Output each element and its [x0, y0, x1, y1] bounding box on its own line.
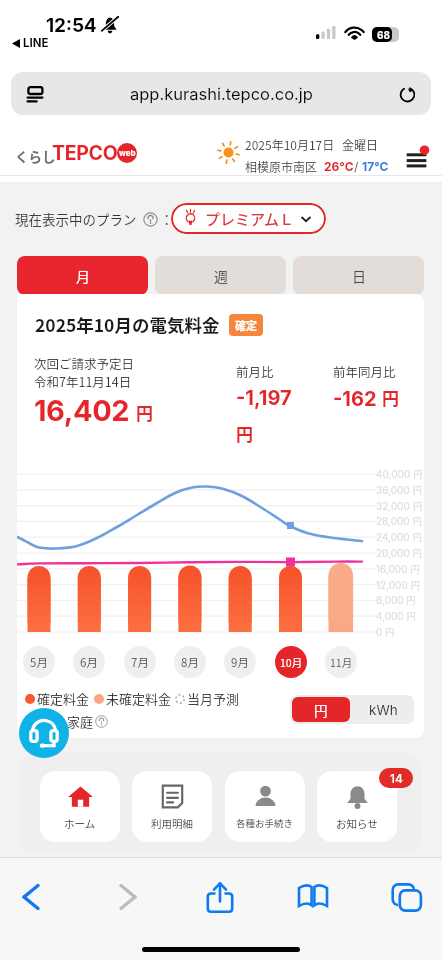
- button[interactable]: 5月: [23, 646, 55, 678]
- button[interactable]: ホーム: [40, 771, 120, 842]
- staticText: 日: [352, 266, 366, 286]
- staticText: 5月: [30, 654, 48, 671]
- staticText: 24,000 円: [376, 531, 423, 544]
- staticText: 相模原市南区: [245, 158, 318, 175]
- staticText: 週: [214, 266, 228, 286]
- button[interactable]: 11月: [325, 646, 357, 678]
- staticText: 17°C: [362, 159, 389, 174]
- staticText: 40,000 円: [376, 468, 423, 481]
- staticText: 7月: [131, 654, 149, 671]
- staticText: 前月比: [236, 362, 274, 380]
- staticText: 12,000 円: [376, 579, 421, 592]
- staticText: 68: [377, 29, 391, 41]
- staticText: 当月予測: [187, 689, 240, 708]
- staticText: 32,000 円: [376, 500, 423, 513]
- staticText: 令和7年11月14日: [34, 372, 132, 390]
- staticText: 8,000 円: [376, 594, 417, 607]
- staticText: 利用明細: [151, 816, 193, 831]
- staticText: 似た家庭: [41, 712, 94, 731]
- staticText: web: [119, 148, 136, 158]
- button[interactable]: 7月: [124, 646, 156, 678]
- staticText: 前年同月比: [333, 362, 396, 380]
- button[interactable]: 6月: [73, 646, 105, 678]
- staticText: 0 円: [376, 626, 396, 639]
- button[interactable]: Share: [201, 878, 239, 916]
- staticText: 6月: [80, 654, 98, 671]
- button[interactable]: 8月: [174, 646, 206, 678]
- staticText: 現在表示中のプラン: [15, 209, 137, 229]
- staticText: 金曜日: [342, 136, 379, 153]
- staticText: 8月: [181, 654, 199, 671]
- button[interactable]: 10月: [275, 646, 307, 678]
- button[interactable]: お知らせ: [317, 771, 397, 842]
- staticText: 16,402: [34, 393, 130, 428]
- other: Page settings: [25, 84, 45, 104]
- staticText: 16,000 円: [376, 563, 421, 576]
- button[interactable]: Bookmarks: [294, 878, 332, 916]
- staticText: 9月: [231, 654, 249, 671]
- staticText: 10月: [280, 655, 303, 670]
- staticText: くらし: [15, 146, 56, 166]
- button[interactable]: 利用明細: [132, 771, 212, 842]
- button[interactable]: 月: [17, 256, 148, 295]
- button[interactable]: Support chat: [19, 708, 69, 758]
- staticText: app.kurashi.tepco.co.jp: [130, 84, 313, 104]
- button[interactable]: 9月: [224, 646, 256, 678]
- staticText: プレミアムＬ: [205, 208, 294, 230]
- staticText: 次回ご請求予定日: [34, 354, 135, 372]
- staticText: -1,197: [236, 386, 292, 410]
- staticText: 2025年10月17日: [245, 136, 335, 153]
- button[interactable]: くらし: [15, 140, 139, 165]
- button[interactable]: 週: [155, 256, 286, 295]
- other: Reload: [398, 84, 417, 103]
- staticText: 確定料金: [37, 689, 90, 708]
- staticText: 各種お手続き: [236, 816, 294, 830]
- button[interactable]: kWh: [352, 695, 414, 724]
- staticText: 未確定料金: [106, 689, 172, 708]
- button[interactable]: Tabs: [386, 878, 424, 916]
- button[interactable]: Forward: [109, 878, 147, 916]
- button[interactable]: 日: [293, 256, 424, 295]
- button[interactable]: Page settings: [11, 72, 431, 115]
- staticText: kWh: [369, 702, 398, 718]
- staticText: 26°C: [324, 159, 354, 174]
- staticText: 確定: [235, 317, 257, 333]
- button[interactable]: 各種お手続き: [225, 771, 305, 842]
- button[interactable]: Back: [12, 878, 50, 916]
- button[interactable]: 円: [292, 697, 350, 722]
- staticText: 円: [236, 421, 253, 446]
- staticText: 4,000 円: [376, 610, 417, 623]
- staticText: /: [354, 159, 362, 174]
- staticText: ホーム: [64, 816, 96, 831]
- staticText: お知らせ: [336, 816, 378, 831]
- staticText: 2025年10月の電気料金: [35, 312, 220, 337]
- button[interactable]: プレミアムＬ: [171, 203, 326, 234]
- staticText: 円: [382, 385, 399, 410]
- staticText: 12:54: [46, 14, 97, 37]
- staticText: ：: [160, 209, 174, 229]
- staticText: 月: [76, 266, 90, 286]
- staticText: 36,000 円: [376, 484, 423, 497]
- staticText: LINE: [23, 36, 49, 50]
- staticText: 円: [314, 700, 328, 720]
- button[interactable]: Menu: [403, 134, 430, 168]
- staticText: 14: [390, 771, 403, 786]
- staticText: 20,000 円: [376, 547, 423, 560]
- staticText: 11月: [330, 655, 353, 670]
- staticText: -162: [333, 387, 377, 411]
- staticText: 28,000 円: [376, 515, 423, 528]
- staticText: TEPCO: [52, 141, 118, 165]
- staticText: 円: [136, 400, 153, 425]
